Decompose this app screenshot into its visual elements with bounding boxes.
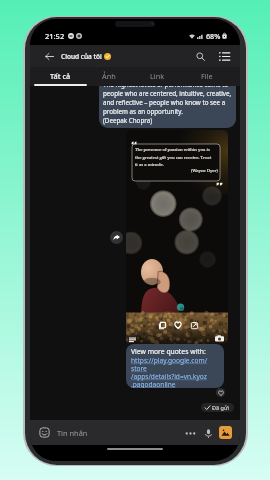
staticText: The highest levels of performance come t… [103, 86, 232, 125]
button[interactable]: Emoji [38, 426, 51, 439]
button[interactable]: Quote image [126, 130, 228, 344]
button[interactable]: Forward message [110, 231, 123, 244]
button[interactable]: Tin nhắn [57, 420, 183, 445]
staticText: 21:52 [45, 31, 65, 41]
button[interactable]: Đã gửi [201, 403, 234, 412]
button[interactable]: More options [183, 426, 197, 440]
button[interactable]: Like [216, 388, 225, 397]
button[interactable]: File [182, 67, 231, 84]
button[interactable]: Back [30, 45, 56, 67]
staticText: https://play.google.com/store /apps/deta… [131, 356, 220, 388]
staticText: Cloud của tôi [61, 52, 102, 61]
button[interactable]: The highest levels of performance come t… [99, 86, 236, 128]
button[interactable]: Link [133, 67, 182, 84]
staticText: Tất cả [50, 71, 71, 81]
button[interactable]: Ảnh [84, 67, 133, 84]
staticText: (Wayne Dyer) [135, 168, 218, 174]
staticText: The presence of passion within you is th… [135, 147, 212, 167]
button[interactable]: View more quotes with: [126, 344, 224, 388]
button[interactable]: Copy [157, 320, 167, 330]
staticText: 68% [206, 31, 221, 41]
button[interactable]: Send image [219, 426, 232, 439]
staticText: View more quotes with: [131, 347, 206, 356]
button[interactable]: List options [213, 45, 235, 67]
staticText: Tin nhắn [57, 428, 88, 438]
button[interactable]: Favourite [173, 320, 183, 330]
staticText: Link [150, 71, 165, 81]
button[interactable]: Tất cả [36, 67, 84, 84]
button[interactable]: Search [189, 45, 211, 67]
staticText: File [201, 71, 213, 81]
staticText: Ảnh [102, 71, 116, 81]
button[interactable]: Share [189, 320, 199, 330]
staticText: Đã gửi [212, 404, 230, 411]
button[interactable]: Voice message [201, 426, 215, 440]
